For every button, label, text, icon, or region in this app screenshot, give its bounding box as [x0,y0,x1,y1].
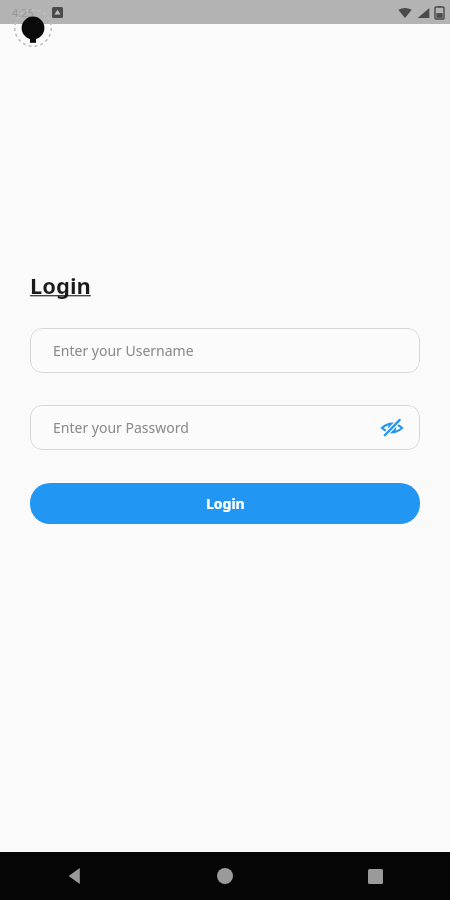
staticText: Login [30,270,91,300]
button[interactable]: Show password [376,412,408,444]
staticText: Login [206,494,245,513]
button[interactable]: Back [0,852,150,900]
staticText: Enter your Password [53,418,189,437]
button[interactable]: Login [30,483,420,524]
button[interactable]: Enter your Password [30,405,420,450]
staticText: 4:25 [12,5,34,20]
button[interactable]: Recent apps [300,852,450,900]
staticText: Enter your Username [53,341,194,360]
button[interactable]: Home [150,852,300,900]
button[interactable]: Enter your Username [30,328,420,373]
